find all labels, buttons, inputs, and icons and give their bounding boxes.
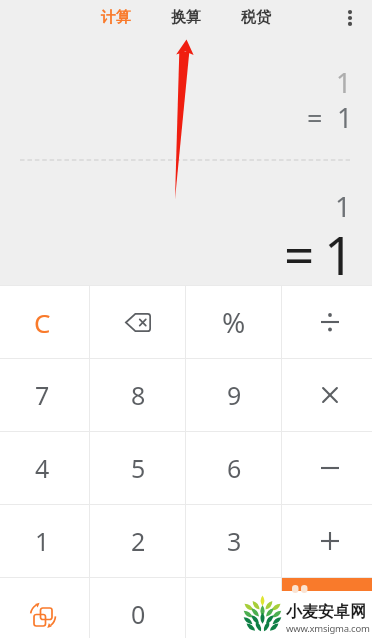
staticText: 1 [335, 187, 352, 225]
button[interactable]: 7 [0, 359, 90, 431]
staticText: 9 [227, 378, 242, 412]
button[interactable]: Subtract [282, 432, 372, 504]
staticText: 3 [227, 524, 242, 558]
button[interactable]: 税贷 [232, 0, 280, 35]
staticText: 8 [131, 378, 146, 412]
other: Add [315, 526, 345, 556]
staticText: 换算 [171, 8, 201, 27]
other: Backspace [125, 313, 151, 332]
button[interactable]: . [186, 578, 282, 638]
staticText: 0 [131, 597, 146, 631]
staticText: 1 [337, 99, 353, 136]
button[interactable]: 1 [0, 505, 90, 577]
other: Unit convert [30, 602, 55, 627]
button[interactable]: More options [330, 0, 370, 35]
button[interactable]: 0 [90, 578, 186, 638]
button[interactable]: 换算 [162, 0, 210, 35]
other: Multiply [315, 380, 345, 410]
button[interactable]: Divide [282, 286, 372, 358]
button[interactable]: % [186, 286, 282, 358]
button[interactable]: = [282, 578, 372, 638]
staticText: % [222, 303, 246, 341]
staticText: 1 [324, 218, 355, 290]
other: Subtract [315, 453, 345, 483]
other: Divide [315, 307, 345, 337]
staticText: 4 [35, 451, 50, 485]
staticText: 6 [227, 451, 242, 485]
button[interactable]: Backspace [90, 286, 186, 358]
button[interactable]: 5 [90, 432, 186, 504]
staticText: 计算 [101, 8, 131, 27]
button[interactable]: Unit convert [0, 578, 90, 638]
staticText: 税贷 [241, 8, 271, 27]
button[interactable]: Multiply [282, 359, 372, 431]
staticText: 5 [131, 451, 146, 485]
staticText: 小麦安卓网 [286, 602, 366, 622]
staticText: 7 [35, 378, 50, 412]
staticText: www.xmsigma.com [286, 622, 370, 635]
button[interactable]: 2 [90, 505, 186, 577]
staticText: C [34, 305, 51, 340]
button[interactable]: Add [282, 505, 372, 577]
button[interactable]: 8 [90, 359, 186, 431]
staticText: 1 [35, 524, 50, 558]
button[interactable]: 6 [186, 432, 282, 504]
button[interactable]: 9 [186, 359, 282, 431]
staticText: 1 [336, 64, 352, 101]
button[interactable]: 3 [186, 505, 282, 577]
staticText: = [322, 595, 339, 633]
button[interactable]: 4 [0, 432, 90, 504]
button[interactable]: 计算 [92, 0, 140, 35]
staticText: 2 [131, 524, 146, 558]
staticText: = [307, 99, 323, 136]
staticText: = [284, 218, 315, 290]
button[interactable]: C [0, 286, 90, 358]
